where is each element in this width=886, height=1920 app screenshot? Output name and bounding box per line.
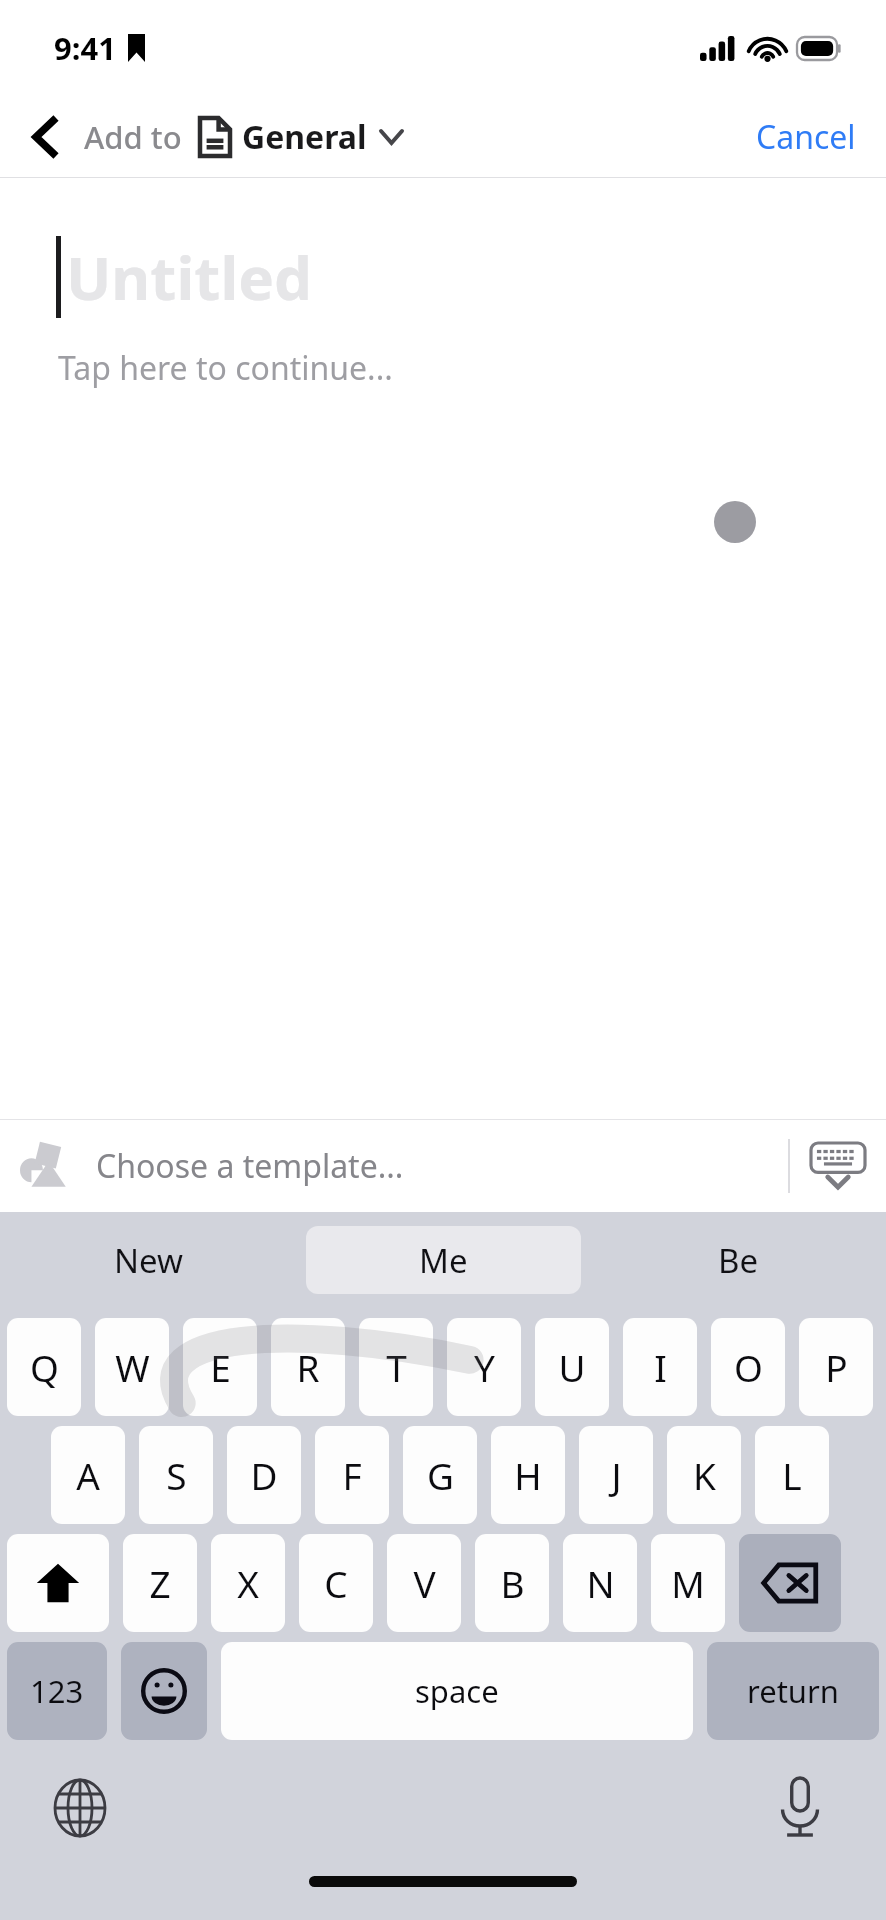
button[interactable]: J — [579, 1426, 653, 1524]
button[interactable]: F — [315, 1426, 389, 1524]
staticText: S — [166, 1450, 187, 1500]
staticText: return — [747, 1670, 839, 1712]
staticText: Me — [419, 1238, 468, 1283]
button[interactable]: B — [475, 1534, 549, 1632]
staticText: H — [514, 1450, 542, 1500]
button[interactable]: A — [51, 1426, 125, 1524]
button[interactable]: 123 — [7, 1642, 107, 1740]
button[interactable]: Shift — [7, 1534, 109, 1632]
button[interactable]: R — [271, 1318, 345, 1416]
staticText: N — [586, 1558, 615, 1608]
button[interactable]: Backspace — [739, 1534, 841, 1632]
button[interactable]: Back — [16, 108, 74, 166]
button[interactable]: K — [667, 1426, 741, 1524]
button[interactable]: U — [535, 1318, 609, 1416]
staticText: T — [386, 1342, 407, 1392]
staticText: D — [250, 1450, 278, 1500]
button[interactable]: C — [299, 1534, 373, 1632]
staticText: J — [611, 1450, 622, 1500]
staticText: O — [734, 1342, 763, 1392]
button[interactable]: G — [403, 1426, 477, 1524]
button[interactable]: Dictate — [768, 1776, 832, 1840]
staticText: X — [237, 1558, 259, 1608]
button[interactable]: Cancel — [748, 105, 864, 169]
staticText: E — [210, 1342, 231, 1392]
staticText: Choose a template... — [96, 1144, 404, 1188]
staticText: A — [76, 1450, 100, 1500]
staticText: U — [558, 1342, 586, 1392]
button[interactable]: New — [10, 1226, 286, 1294]
button[interactable]: space — [221, 1642, 693, 1740]
staticText: Untitled — [66, 236, 312, 318]
staticText: F — [342, 1450, 362, 1500]
button[interactable]: return — [707, 1642, 879, 1740]
button[interactable]: X — [211, 1534, 285, 1632]
button[interactable]: Choose a template... — [0, 1120, 788, 1212]
button[interactable]: Y — [447, 1318, 521, 1416]
staticText: 123 — [30, 1670, 84, 1712]
button[interactable]: Tap here to continue... — [58, 346, 393, 390]
button[interactable]: General — [200, 115, 402, 159]
staticText: Add to — [84, 116, 182, 158]
button[interactable]: Emoji — [121, 1642, 207, 1740]
button[interactable]: N — [563, 1534, 637, 1632]
staticText: K — [693, 1450, 716, 1500]
button[interactable]: Z — [123, 1534, 197, 1632]
button[interactable]: Me — [306, 1226, 581, 1294]
staticText: B — [500, 1558, 525, 1608]
button[interactable]: P — [799, 1318, 873, 1416]
staticText: Z — [149, 1558, 171, 1608]
staticText: space — [415, 1670, 499, 1712]
staticText: I — [654, 1342, 667, 1392]
staticText: P — [825, 1342, 848, 1392]
staticText: W — [115, 1342, 150, 1392]
button[interactable]: M — [651, 1534, 725, 1632]
button[interactable]: E — [183, 1318, 257, 1416]
button[interactable]: O — [711, 1318, 785, 1416]
staticText: V — [413, 1558, 436, 1608]
staticText: R — [296, 1342, 320, 1392]
button[interactable]: W — [95, 1318, 169, 1416]
staticText: Y — [474, 1342, 495, 1392]
button[interactable]: Change keyboard — [48, 1776, 112, 1840]
staticText: Be — [718, 1238, 759, 1283]
button[interactable]: D — [227, 1426, 301, 1524]
button[interactable]: T — [359, 1318, 433, 1416]
button[interactable]: L — [755, 1426, 829, 1524]
staticText: 9:41 — [54, 27, 116, 69]
staticText: Cancel — [756, 115, 856, 159]
button[interactable]: Q — [7, 1318, 81, 1416]
button[interactable]: Hide keyboard — [790, 1120, 886, 1212]
button[interactable]: Be — [601, 1226, 876, 1294]
button[interactable]: H — [491, 1426, 565, 1524]
staticText: M — [671, 1558, 705, 1608]
staticText: New — [114, 1238, 183, 1283]
button[interactable]: S — [139, 1426, 213, 1524]
staticText: C — [324, 1558, 348, 1608]
button[interactable]: V — [387, 1534, 461, 1632]
button[interactable]: I — [623, 1318, 697, 1416]
staticText: General — [242, 115, 367, 159]
staticText: G — [427, 1450, 454, 1500]
staticText: Q — [30, 1342, 59, 1392]
staticText: L — [782, 1450, 802, 1500]
